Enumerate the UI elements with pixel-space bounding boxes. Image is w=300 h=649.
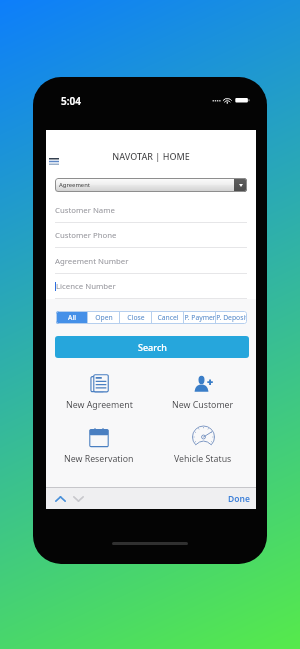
button[interactable]: Customer Phone — [46, 222, 256, 248]
button[interactable]: Vehicle Status — [158, 426, 248, 465]
staticText: 5:04 — [61, 94, 81, 108]
staticText: All — [68, 313, 76, 322]
button[interactable]: Open — [88, 311, 119, 324]
staticText: Cancel — [157, 313, 179, 322]
staticText: Customer Phone — [55, 230, 117, 241]
button[interactable]: Customer Name — [46, 197, 256, 223]
staticText: New Agreement — [66, 399, 133, 411]
staticText: Open — [95, 313, 113, 322]
staticText: Agreement — [59, 181, 91, 189]
staticText: Vehicle Status — [174, 453, 232, 465]
button[interactable]: Next field — [71, 492, 86, 506]
button[interactable]: Done — [228, 493, 250, 505]
staticText: NAVOTAR | HOME — [46, 150, 256, 162]
button[interactable]: Agreement — [55, 178, 247, 192]
button[interactable]: Close — [120, 311, 151, 324]
button[interactable]: New Reservation — [54, 428, 144, 465]
button[interactable]: All — [56, 311, 87, 324]
button[interactable]: New Customer — [158, 374, 248, 411]
button[interactable]: Licence Number — [46, 273, 256, 299]
button[interactable]: Cancel — [152, 311, 183, 324]
button[interactable]: P. Deposit — [216, 311, 247, 324]
staticText: Licence Number — [56, 281, 116, 292]
staticText: Done — [228, 493, 250, 505]
button[interactable]: New Agreement — [54, 374, 144, 411]
staticText: Close — [127, 313, 145, 322]
staticText: Agreement Number — [55, 256, 129, 267]
button[interactable]: Previous field — [53, 492, 68, 506]
staticText: Customer Name — [55, 205, 115, 216]
staticText: P. Payment — [184, 313, 215, 322]
button[interactable]: Menu — [46, 153, 62, 169]
button[interactable]: Search — [55, 336, 249, 358]
staticText: P. Deposit — [216, 313, 247, 322]
button[interactable]: Agreement Number — [46, 248, 256, 274]
staticText: New Reservation — [64, 453, 134, 465]
staticText: Search — [138, 341, 167, 353]
staticText: New Customer — [172, 399, 234, 411]
button[interactable]: P. Payment — [184, 311, 215, 324]
